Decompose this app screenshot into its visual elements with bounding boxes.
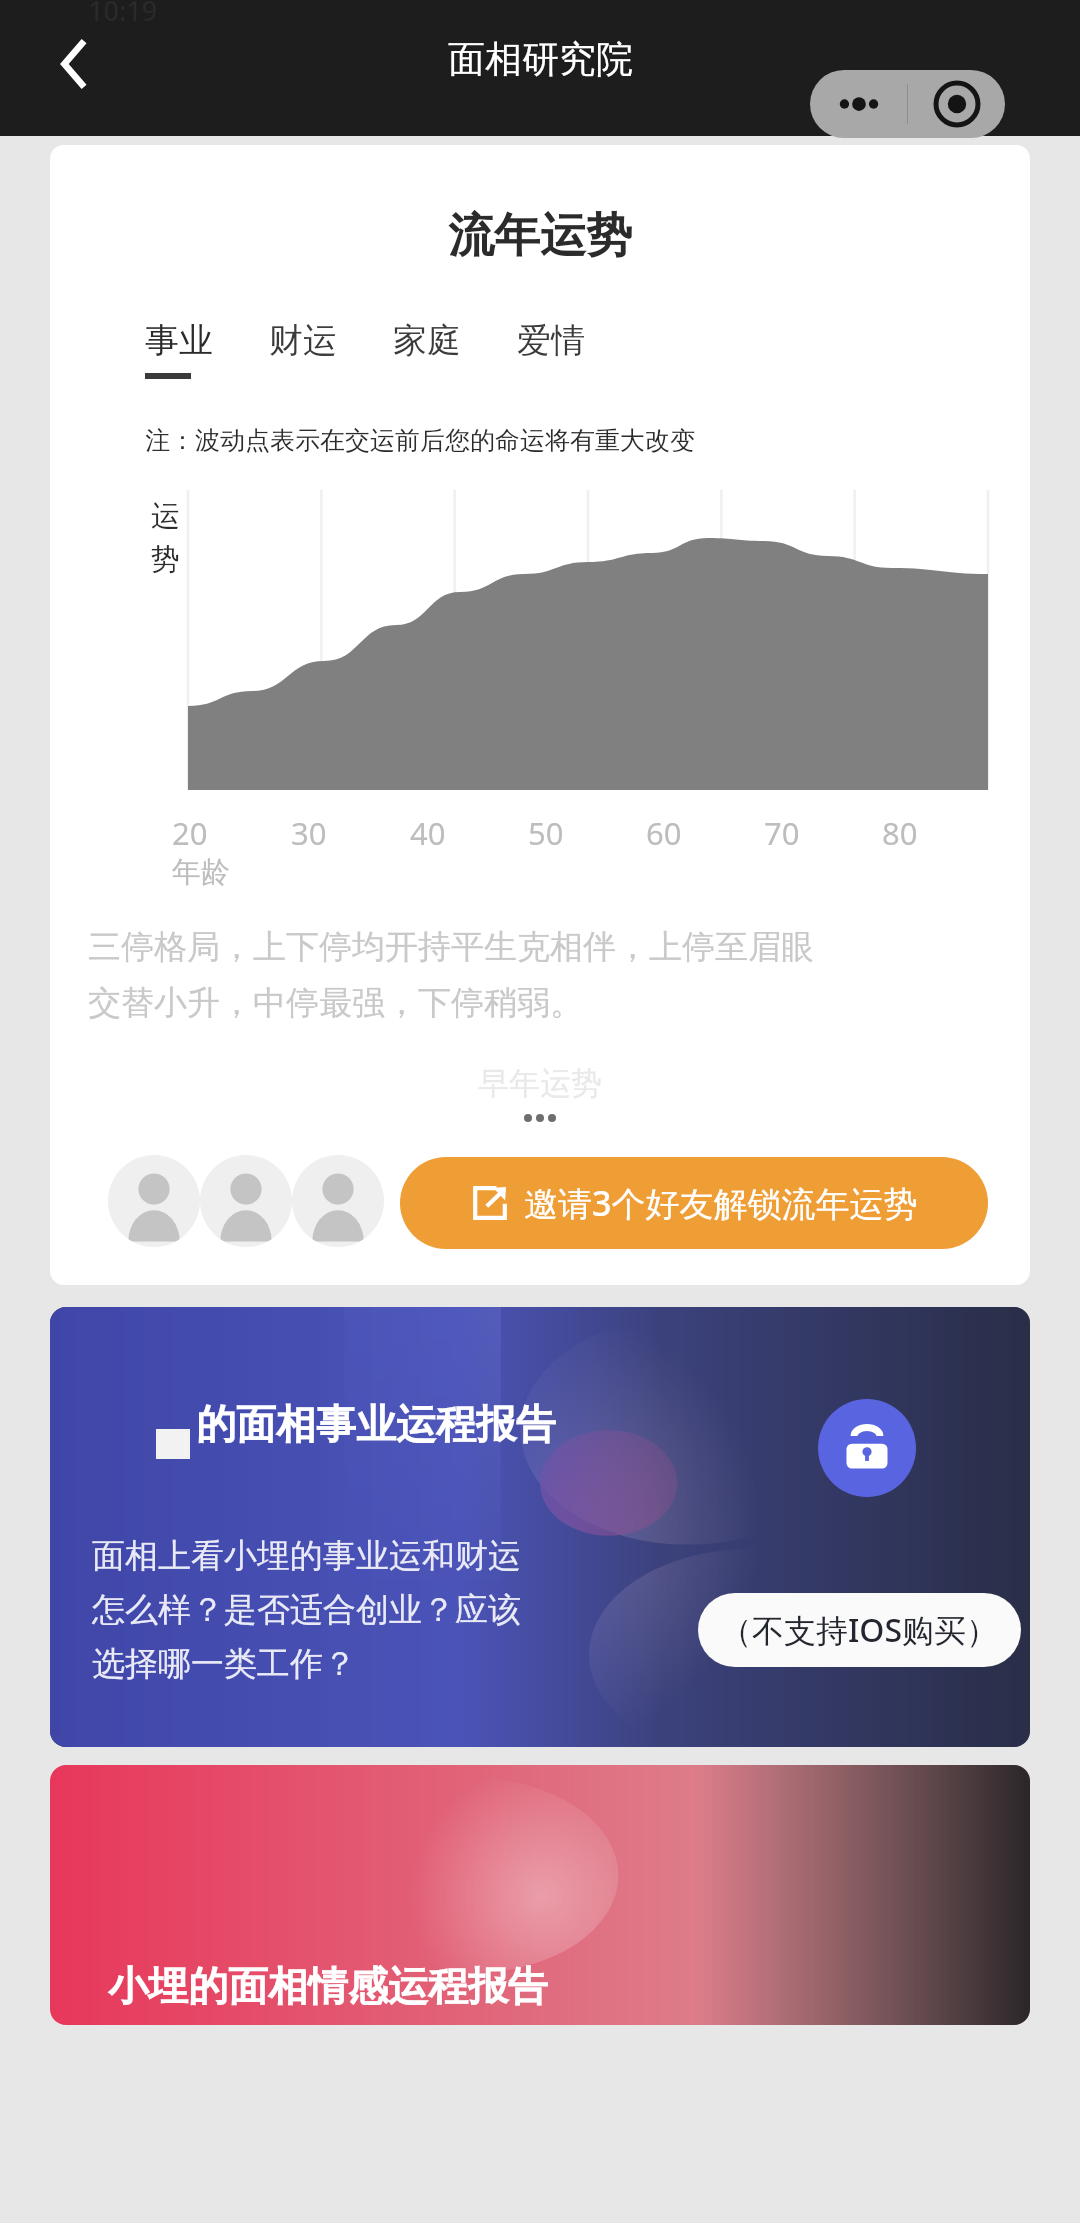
staticText: 10:19 xyxy=(88,0,158,29)
staticText: 注：波动点表示在交运前后您的命运将有重大改变 xyxy=(145,425,695,456)
button[interactable]: 事业 xyxy=(145,319,269,379)
staticText: 年龄 xyxy=(172,854,230,891)
staticText: 面相上看小埋的事业运和财运 xyxy=(92,1535,521,1577)
staticText: （不支持IOS购买） xyxy=(720,1608,999,1652)
staticText: 小埋的面相情感运程报告 xyxy=(108,1961,548,2011)
staticText: 20 xyxy=(172,812,208,854)
button[interactable]: 小埋的面相情感运程报告 xyxy=(50,1765,1030,2025)
staticText: 家庭 xyxy=(393,319,461,362)
button[interactable]: Back xyxy=(40,26,116,102)
button[interactable]: Friend avatar xyxy=(200,1155,292,1247)
staticText: 30 xyxy=(291,812,327,854)
button[interactable]: 的面相事业运程报告 xyxy=(50,1307,1030,1747)
button[interactable]: 家庭 xyxy=(393,319,517,379)
staticText: 运 xyxy=(151,498,180,535)
staticText: 40 xyxy=(410,812,446,854)
staticText: 流年运势 xyxy=(50,207,1030,265)
staticText: 爱情 xyxy=(517,319,585,362)
staticText: 50 xyxy=(528,812,564,854)
staticText: 邀请3个好友解锁流年运势 xyxy=(524,1180,918,1226)
staticText: 80 xyxy=(882,812,918,854)
button[interactable]: Friend avatar xyxy=(292,1155,384,1247)
staticText: 财运 xyxy=(269,319,337,362)
staticText: 事业 xyxy=(145,319,213,362)
staticText: 的面相事业运程报告 xyxy=(196,1399,556,1449)
button[interactable]: 爱情 xyxy=(517,319,641,379)
staticText: 选择哪一类工作？ xyxy=(92,1643,356,1685)
button[interactable]: （不支持IOS购买） xyxy=(720,1593,999,1667)
staticText: 60 xyxy=(646,812,682,854)
other: Locked xyxy=(818,1399,916,1497)
button[interactable]: 财运 xyxy=(269,319,393,379)
staticText: 三停格局，上下停均开持平生克相伴，上停至眉眼 xyxy=(88,926,814,968)
button[interactable]: 邀请3个好友解锁流年运势 xyxy=(400,1157,988,1249)
button[interactable]: Friend avatar xyxy=(108,1155,200,1247)
staticText: 70 xyxy=(764,812,800,854)
staticText: 面相研究院 xyxy=(448,36,633,83)
button[interactable]: More options xyxy=(810,70,1005,138)
staticText: 势 xyxy=(151,541,180,578)
staticText: 交替小升，中停最强，下停稍弱。 xyxy=(88,982,583,1024)
staticText: 早年运势 xyxy=(88,1064,992,1103)
staticText: 怎么样？是否适合创业？应该 xyxy=(92,1589,521,1631)
